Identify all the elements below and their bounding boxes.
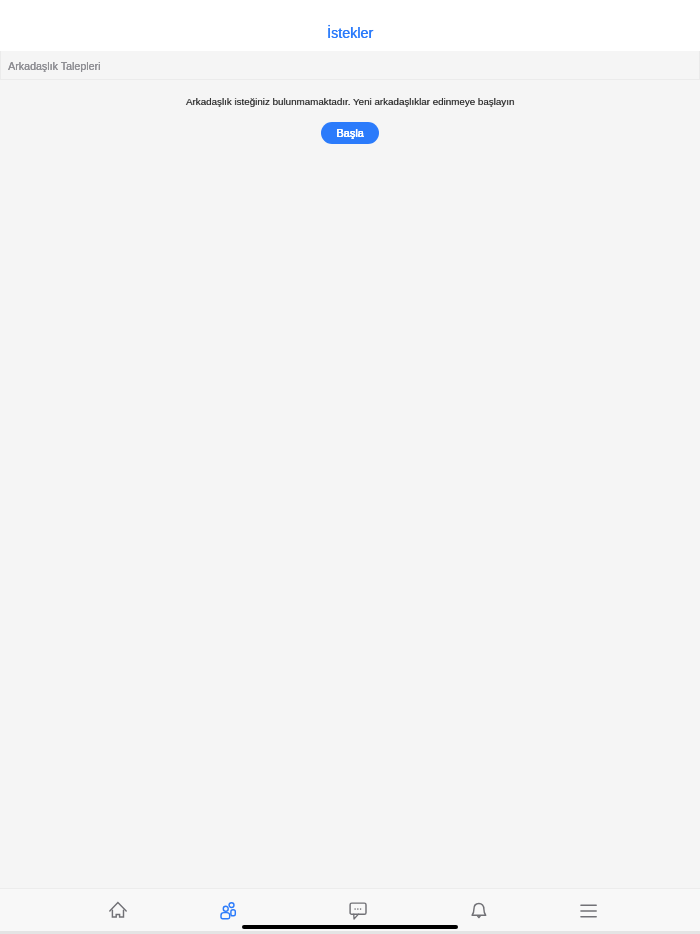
button[interactable]: Notifications bbox=[457, 890, 501, 932]
button[interactable]: Messages bbox=[336, 890, 380, 932]
staticText: Arkadaşlık Talepleri bbox=[8, 60, 101, 72]
staticText: Başla bbox=[336, 127, 364, 139]
staticText: İstekler bbox=[0, 25, 700, 41]
staticText: İstekler bbox=[0, 25, 700, 41]
staticText: Arkadaşlık Talepleri bbox=[8, 60, 101, 72]
button[interactable]: Başla bbox=[321, 122, 379, 144]
button[interactable]: Home bbox=[96, 889, 140, 931]
staticText: Arkadaşlık isteğiniz bulunmamaktadır. Ye… bbox=[0, 96, 700, 107]
staticText: Başla bbox=[336, 127, 364, 139]
button[interactable]: Friends bbox=[207, 890, 251, 932]
staticText: Arkadaşlık isteğiniz bulunmamaktadır. Ye… bbox=[0, 96, 700, 107]
button[interactable]: Arkadaşlık Talepleri bbox=[0, 51, 700, 80]
button[interactable]: Menu bbox=[567, 890, 611, 932]
